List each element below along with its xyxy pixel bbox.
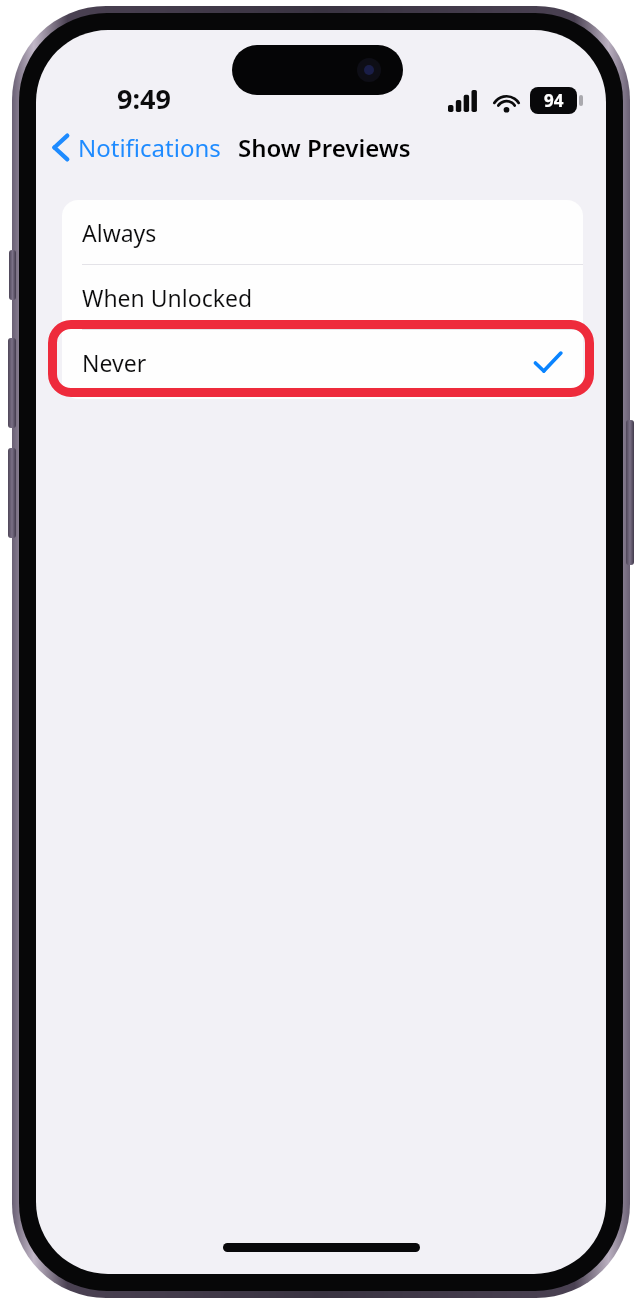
staticText: When Unlocked xyxy=(82,282,253,313)
button[interactable]: When Unlocked xyxy=(62,265,583,329)
staticText: Always xyxy=(82,217,157,248)
staticText: 94 xyxy=(544,89,564,112)
staticText: Never xyxy=(82,347,147,378)
button[interactable]: Back to Notifications xyxy=(44,122,229,172)
staticText: Notifications xyxy=(78,131,221,164)
button[interactable]: Always xyxy=(62,200,583,264)
staticText: Show Previews xyxy=(238,131,411,164)
staticText: 9:49 xyxy=(117,80,171,116)
button[interactable]: Never xyxy=(62,330,583,394)
